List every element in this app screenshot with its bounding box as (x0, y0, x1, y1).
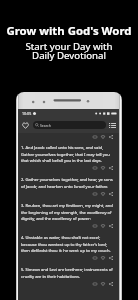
button[interactable]: Favorite (99, 164, 107, 172)
staticText: Search (40, 123, 51, 128)
button[interactable]: 4. Unstable as water, thou shalt not exc… (18, 231, 119, 263)
button[interactable]: Favorite (99, 254, 107, 262)
button[interactable]: Note (91, 222, 99, 230)
button[interactable]: Favorites (18, 117, 33, 133)
staticText: 2. Gather yourselves together, and hear,… (21, 177, 115, 189)
button[interactable]: List view (106, 117, 119, 133)
button[interactable]: Share (107, 133, 115, 141)
button[interactable]: Share (107, 254, 115, 262)
button[interactable]: Share (107, 190, 115, 198)
button[interactable]: 2. Gather yourselves together, and hear,… (18, 173, 119, 199)
button[interactable]: Note (18, 133, 119, 141)
staticText: Start your Day with Daily Devotional (25, 40, 113, 62)
staticText: 1. And Jacob called unto his sons, and s… (21, 145, 115, 163)
button[interactable]: Share (107, 222, 115, 230)
button[interactable]: Note (91, 190, 99, 198)
button[interactable]: Share (107, 164, 115, 172)
button[interactable]: 1. And Jacob called unto his sons, and s… (18, 141, 119, 173)
button[interactable]: 5. Simeon and Levi are brethren; instrum… (18, 263, 119, 289)
staticText: 4. Unstable as water, thou shalt not exc… (21, 235, 115, 253)
staticText: Grow with God's Word (6, 23, 132, 39)
button[interactable]: Share (107, 280, 115, 288)
staticText: 3. Reuben, thou art my firstborn, my mig… (21, 203, 115, 221)
button[interactable]: Favorite (99, 280, 107, 288)
button[interactable]: Note (91, 133, 99, 141)
button[interactable]: Note (91, 280, 99, 288)
button[interactable]: Search (33, 121, 106, 129)
button[interactable]: Favorite (99, 133, 107, 141)
button[interactable]: 3. Reuben, thou art my firstborn, my mig… (18, 199, 119, 231)
staticText: 10:05 (22, 111, 32, 116)
button[interactable]: Favorite (99, 190, 107, 198)
staticText: 5. Simeon and Levi are brethren; instrum… (21, 267, 115, 279)
button[interactable]: Note (91, 164, 99, 172)
button[interactable]: Favorite (99, 222, 107, 230)
button[interactable]: Note (91, 254, 99, 262)
